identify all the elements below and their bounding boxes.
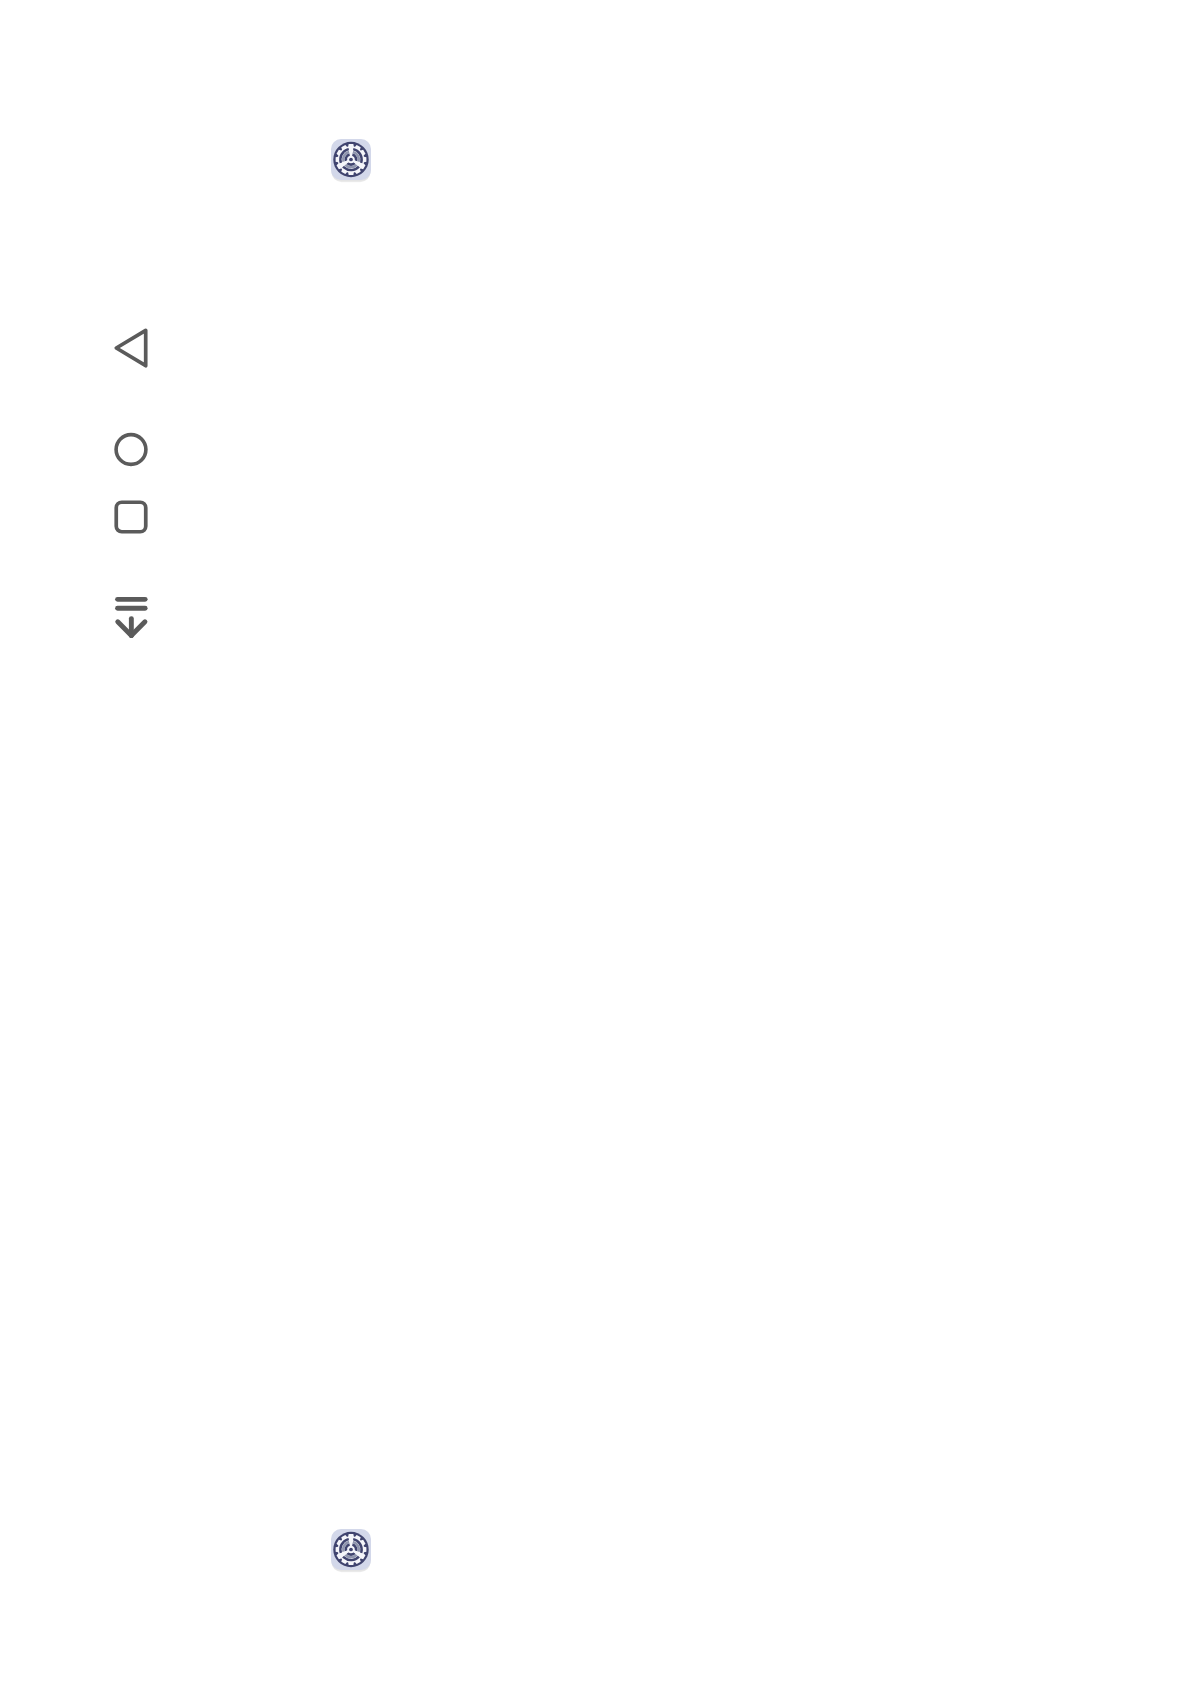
button[interactable]: Back [107, 324, 155, 372]
button[interactable]: Recent apps [107, 493, 155, 541]
button[interactable]: Hide keyboard [107, 588, 155, 636]
button[interactable]: Home [107, 425, 155, 473]
button[interactable]: Settings [331, 1529, 371, 1570]
button[interactable]: Settings [331, 139, 371, 180]
